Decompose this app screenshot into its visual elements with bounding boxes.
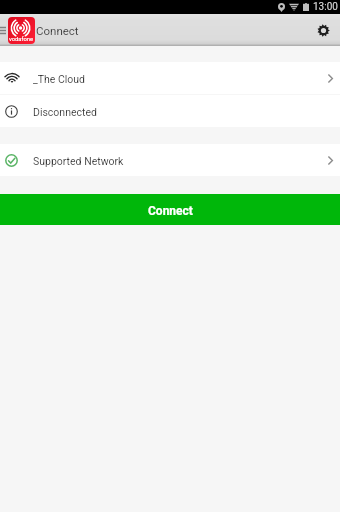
staticText: Connect xyxy=(36,24,79,37)
staticText: 13:00 xyxy=(313,1,338,13)
staticText: Connect xyxy=(148,204,193,218)
button[interactable]: Settings xyxy=(312,19,334,41)
button[interactable]: _The Cloud xyxy=(0,62,340,94)
staticText: _The Cloud xyxy=(33,73,86,85)
button[interactable]: Vodafone xyxy=(8,17,35,44)
staticText: vodafone xyxy=(9,36,34,43)
button[interactable]: Menu xyxy=(0,24,6,37)
staticText: Supported Network xyxy=(33,155,124,167)
button[interactable]: Disconnected xyxy=(0,95,340,127)
button[interactable]: Connect xyxy=(0,194,340,225)
button[interactable]: Supported Network xyxy=(0,144,340,176)
staticText: Disconnected xyxy=(33,106,97,118)
